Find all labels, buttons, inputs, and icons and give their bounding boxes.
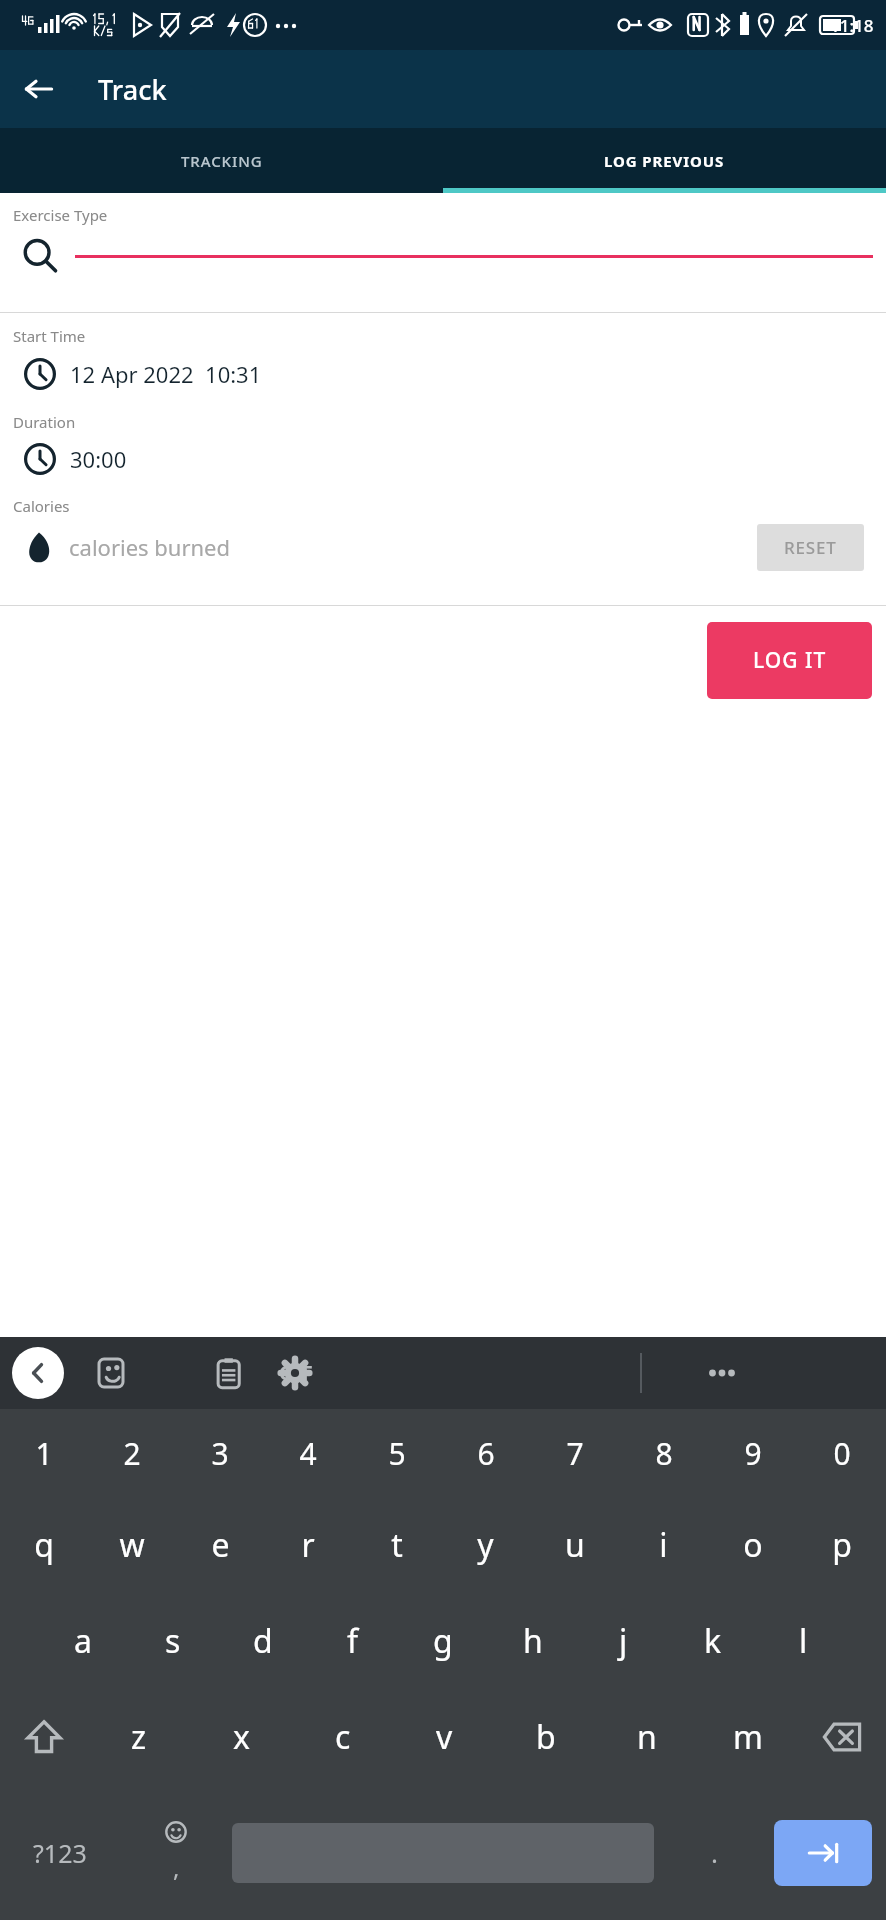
button[interactable]: b: [495, 1689, 596, 1785]
button[interactable]: Enter: [774, 1820, 872, 1886]
button[interactable]: ?123: [0, 1785, 120, 1920]
button[interactable]: Clipboard: [199, 1337, 259, 1409]
staticText: t: [391, 1523, 403, 1567]
button[interactable]: j: [578, 1593, 668, 1689]
button[interactable]: 2: [88, 1409, 176, 1497]
button[interactable]: r: [264, 1497, 352, 1593]
button[interactable]: s: [128, 1593, 218, 1689]
staticText: i: [659, 1523, 668, 1567]
button[interactable]: Shift: [0, 1689, 88, 1785]
button[interactable]: h: [488, 1593, 578, 1689]
staticText: 2: [123, 1433, 141, 1474]
button[interactable]: Stickers: [83, 1337, 143, 1409]
button[interactable]: 7: [530, 1409, 619, 1497]
staticText: 1: [35, 1433, 53, 1474]
staticText: d: [253, 1619, 273, 1663]
staticText: c: [335, 1715, 351, 1759]
staticText: Duration: [13, 412, 76, 432]
staticText: b: [536, 1715, 556, 1759]
button[interactable]: 1: [0, 1409, 88, 1497]
button[interactable]: k: [668, 1593, 758, 1689]
staticText: 6: [477, 1433, 495, 1474]
staticText: 9: [744, 1433, 762, 1474]
button[interactable]: RESET: [757, 524, 864, 571]
staticText: 4: [299, 1433, 317, 1474]
staticText: RESET: [784, 536, 837, 559]
button[interactable]: 5: [352, 1409, 441, 1497]
staticText: u: [565, 1523, 585, 1567]
staticText: g: [433, 1619, 453, 1663]
staticText: Exercise Type: [13, 205, 108, 225]
button[interactable]: p: [797, 1497, 886, 1593]
staticText: TRACKING: [181, 151, 263, 171]
staticText: r: [301, 1523, 315, 1567]
staticText: 3: [211, 1433, 229, 1474]
button[interactable]: i: [619, 1497, 708, 1593]
button[interactable]: z: [88, 1689, 190, 1785]
staticText: ?123: [33, 1836, 87, 1870]
staticText: j: [619, 1619, 628, 1663]
staticText: y: [477, 1523, 494, 1567]
button[interactable]: Back: [0, 50, 78, 128]
staticText: n: [637, 1715, 657, 1759]
button[interactable]: n: [596, 1689, 697, 1785]
button[interactable]: m: [697, 1689, 798, 1785]
button[interactable]: calories burned: [0, 530, 231, 564]
button[interactable]: Collapse keyboard: [12, 1347, 64, 1399]
button[interactable]: t: [352, 1497, 441, 1593]
button[interactable]: q: [0, 1497, 88, 1593]
staticText: e: [211, 1523, 230, 1567]
staticText: s: [165, 1619, 181, 1663]
button[interactable]: [0, 225, 886, 287]
button[interactable]: y: [441, 1497, 530, 1593]
button[interactable]: l: [758, 1593, 848, 1689]
staticText: f: [347, 1619, 359, 1663]
button[interactable]: o: [708, 1497, 797, 1593]
button[interactable]: u: [530, 1497, 619, 1593]
staticText: h: [523, 1619, 543, 1663]
button[interactable]: GIF: [266, 1343, 326, 1403]
button[interactable]: w: [88, 1497, 176, 1593]
button[interactable]: Emoji and comma: [120, 1785, 232, 1920]
button[interactable]: 30:00: [0, 432, 886, 486]
staticText: .: [711, 1835, 718, 1870]
button[interactable]: TRACKING: [0, 128, 443, 193]
button[interactable]: 4: [264, 1409, 352, 1497]
button[interactable]: 6: [441, 1409, 530, 1497]
staticText: 5: [388, 1433, 406, 1474]
button[interactable]: 9: [708, 1409, 797, 1497]
button[interactable]: e: [176, 1497, 264, 1593]
staticText: x: [233, 1715, 250, 1759]
button[interactable]: Backspace: [798, 1689, 886, 1785]
button[interactable]: g: [398, 1593, 488, 1689]
button[interactable]: a: [38, 1593, 128, 1689]
staticText: 0: [833, 1433, 851, 1474]
button[interactable]: LOG IT: [707, 622, 872, 699]
button[interactable]: Keyboard settings: [265, 1337, 325, 1409]
staticText: m: [733, 1715, 763, 1759]
button[interactable]: 12 Apr 2022 10:31: [0, 346, 886, 402]
staticText: k: [704, 1619, 722, 1663]
button[interactable]: 3: [176, 1409, 264, 1497]
staticText: a: [74, 1619, 92, 1663]
staticText: 11:18: [830, 14, 874, 37]
staticText: calories burned: [69, 532, 231, 562]
button[interactable]: f: [308, 1593, 398, 1689]
staticText: ,: [173, 1851, 180, 1884]
staticText: LOG PREVIOUS: [604, 151, 725, 171]
button[interactable]: More options: [690, 1341, 754, 1405]
staticText: Start Time: [13, 326, 86, 346]
button[interactable]: 8: [619, 1409, 708, 1497]
button[interactable]: c: [292, 1689, 394, 1785]
staticText: 7: [566, 1433, 584, 1474]
staticText: p: [832, 1523, 852, 1567]
button[interactable]: LOG PREVIOUS: [443, 128, 886, 193]
button[interactable]: d: [218, 1593, 308, 1689]
button[interactable]: x: [190, 1689, 292, 1785]
button[interactable]: v: [394, 1689, 495, 1785]
staticText: 12 Apr 2022 10:31: [70, 359, 262, 389]
button[interactable]: 0: [797, 1409, 886, 1497]
staticText: Calories: [13, 496, 70, 516]
